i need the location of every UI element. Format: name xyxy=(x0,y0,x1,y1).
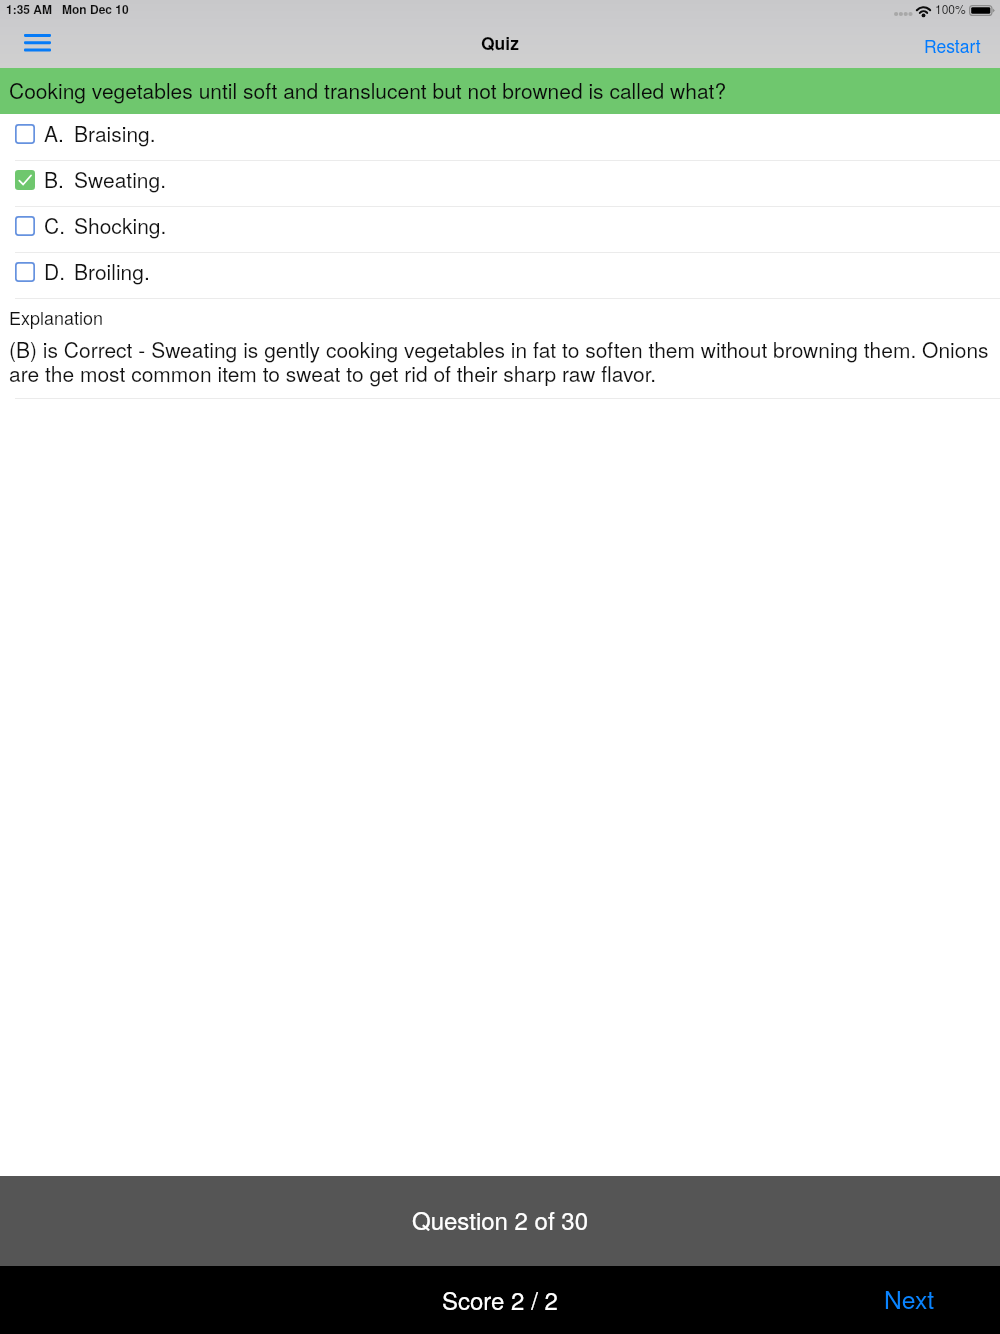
staticText: B. xyxy=(44,164,64,194)
staticText: Explanation xyxy=(9,304,104,330)
staticText: Question 2 of 30 xyxy=(412,1202,588,1236)
staticText: Score 2 / 2 xyxy=(442,1282,558,1316)
staticText: C. xyxy=(44,210,65,240)
staticText: 100% xyxy=(935,0,966,17)
staticText: 1:35 AM xyxy=(6,0,53,17)
button[interactable]: Menu xyxy=(9,21,65,65)
staticText: Cooking vegetables until soft and transl… xyxy=(9,75,727,105)
button[interactable]: C. xyxy=(0,207,1000,253)
staticText: Restart xyxy=(924,33,981,58)
staticText: Mon Dec 10 xyxy=(62,0,129,17)
staticText: Shocking. xyxy=(74,210,167,240)
staticText: D. xyxy=(44,256,65,286)
staticText: Broiling. xyxy=(74,256,150,286)
staticText: Sweating. xyxy=(74,164,167,194)
button[interactable]: D. xyxy=(0,253,1000,299)
staticText: Next xyxy=(884,1281,935,1316)
staticText: A. xyxy=(44,118,64,148)
button[interactable]: Next xyxy=(870,1272,949,1328)
staticText: Quiz xyxy=(481,30,519,55)
staticText: Braising. xyxy=(74,118,156,148)
staticText: (B) is Correct - Sweating is gently cook… xyxy=(9,334,993,388)
button[interactable]: Restart xyxy=(914,23,991,67)
button[interactable]: A. xyxy=(0,115,1000,161)
button[interactable]: B. xyxy=(0,161,1000,207)
